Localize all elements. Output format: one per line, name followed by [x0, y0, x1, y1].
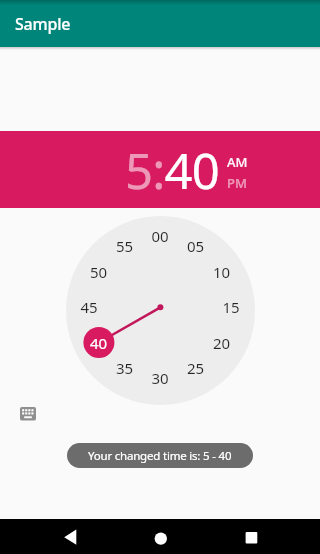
button[interactable]: PM: [227, 174, 247, 192]
button[interactable]: [14, 401, 42, 427]
staticText: 5:40: [125, 137, 220, 204]
staticText: Sample: [15, 13, 71, 35]
button[interactable]: AM: [227, 153, 248, 171]
button[interactable]: [213, 519, 320, 554]
staticText: PM: [227, 174, 247, 192]
staticText: AM: [227, 153, 248, 171]
button[interactable]: [0, 519, 106, 554]
staticText: Your changed time is: 5 - 40: [88, 448, 232, 464]
button[interactable]: [106, 519, 213, 554]
